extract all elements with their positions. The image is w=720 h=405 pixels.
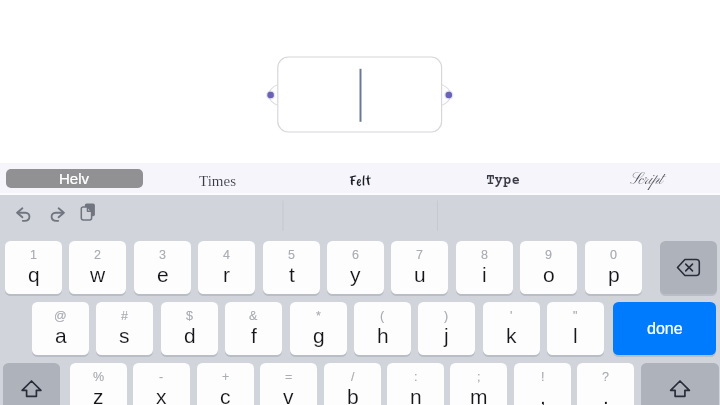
staticText: # — [121, 309, 128, 323]
staticText: i — [482, 263, 487, 286]
staticText: . — [603, 385, 609, 405]
staticText: & — [249, 309, 258, 323]
button[interactable]: done — [613, 302, 716, 355]
staticText: e — [157, 263, 169, 286]
button[interactable]: 0 — [585, 241, 642, 294]
button[interactable]: 3 — [134, 241, 191, 294]
staticText: l — [573, 324, 578, 347]
button[interactable]: + — [197, 363, 254, 405]
staticText: Script — [630, 170, 663, 190]
staticText: done — [647, 320, 683, 338]
button[interactable]: Helv — [6, 169, 143, 188]
staticText: m — [470, 385, 488, 405]
button[interactable]: * — [290, 302, 347, 355]
button[interactable]: 2 — [69, 241, 126, 294]
staticText: y — [350, 263, 361, 286]
staticText: 8 — [481, 248, 488, 262]
button[interactable]: 6 — [327, 241, 384, 294]
button[interactable]: % — [70, 363, 127, 405]
button[interactable]: ! — [514, 363, 571, 405]
staticText: a — [55, 324, 67, 347]
button[interactable]: Paste — [73, 200, 104, 230]
staticText: ; — [477, 370, 481, 384]
button[interactable]: ' — [483, 302, 540, 355]
button[interactable]: = — [260, 363, 317, 405]
staticText: Felt — [349, 171, 371, 190]
staticText: u — [414, 263, 426, 286]
staticText: = — [285, 370, 293, 384]
staticText: " — [573, 309, 578, 323]
button[interactable]: Backspace — [660, 241, 717, 294]
staticText: c — [220, 385, 231, 405]
staticText: o — [543, 263, 555, 286]
staticText: j — [444, 324, 449, 347]
staticText: r — [223, 263, 230, 286]
button[interactable]: 7 — [391, 241, 448, 294]
staticText: ? — [602, 370, 609, 384]
staticText: f — [251, 324, 257, 347]
button[interactable]: " — [547, 302, 604, 355]
staticText: ( — [380, 309, 385, 323]
button[interactable]: $ — [161, 302, 218, 355]
staticText: t — [289, 263, 295, 286]
staticText: 9 — [545, 248, 552, 262]
staticText: : — [414, 370, 418, 384]
staticText: 6 — [352, 248, 359, 262]
staticText: k — [506, 324, 517, 347]
button[interactable]: 1 — [5, 241, 62, 294]
staticText: $ — [186, 309, 193, 323]
button[interactable]: / — [324, 363, 381, 405]
staticText: 5 — [288, 248, 295, 262]
staticText: 2 — [94, 248, 101, 262]
staticText: 0 — [610, 248, 617, 262]
staticText: - — [159, 370, 164, 384]
staticText: % — [93, 370, 105, 384]
button[interactable]: @ — [32, 302, 89, 355]
button[interactable]: ( — [354, 302, 411, 355]
staticText: 7 — [416, 248, 423, 262]
staticText: 1 — [30, 248, 37, 262]
button[interactable]: 9 — [520, 241, 577, 294]
button[interactable]: Times — [157, 163, 277, 195]
staticText: 4 — [223, 248, 230, 262]
button[interactable]: Felt — [300, 163, 420, 195]
staticText: x — [156, 385, 167, 405]
button[interactable]: : — [387, 363, 444, 405]
staticText: ' — [510, 309, 513, 323]
button[interactable]: ? — [577, 363, 634, 405]
button[interactable]: ) — [418, 302, 475, 355]
button[interactable]: Redo — [41, 200, 72, 230]
button[interactable]: 8 — [456, 241, 513, 294]
button[interactable]: ; — [450, 363, 507, 405]
staticText: w — [90, 263, 106, 286]
staticText: z — [93, 385, 104, 405]
staticText: @ — [54, 309, 67, 323]
staticText: s — [119, 324, 130, 347]
staticText: q — [28, 263, 40, 286]
staticText: h — [377, 324, 389, 347]
staticText: + — [222, 370, 230, 384]
button[interactable]: Type — [443, 163, 563, 195]
staticText: n — [410, 385, 422, 405]
staticText: Times — [199, 173, 236, 190]
button[interactable]: - — [133, 363, 190, 405]
staticText: * — [316, 309, 321, 323]
staticText: b — [347, 385, 359, 405]
button[interactable]: Shift — [3, 363, 60, 405]
button[interactable]: 4 — [198, 241, 255, 294]
staticText: 3 — [159, 248, 166, 262]
button[interactable]: Shift — [641, 363, 719, 405]
button[interactable]: & — [225, 302, 282, 355]
staticText: v — [283, 385, 294, 405]
button[interactable]: 5 — [263, 241, 320, 294]
staticText: ! — [541, 370, 545, 384]
button[interactable]: Undo — [9, 200, 40, 230]
staticText: , — [540, 385, 546, 405]
staticText: ) — [444, 309, 449, 323]
staticText: Type — [486, 173, 520, 189]
button[interactable]: Script — [586, 163, 706, 195]
staticText: d — [184, 324, 196, 347]
button[interactable]: # — [96, 302, 153, 355]
staticText: p — [608, 263, 620, 286]
staticText: Helv — [59, 170, 90, 187]
